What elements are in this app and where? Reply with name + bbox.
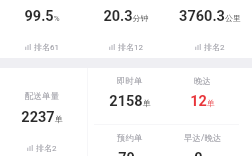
button[interactable]: 晚达 — [166, 68, 239, 124]
staticText: 排名61 — [34, 42, 59, 52]
button[interactable]: 配送单量 — [0, 68, 84, 156]
staticText: 预约单 — [117, 133, 143, 144]
button[interactable]: 即时单 — [94, 68, 166, 124]
staticText: 即时单 — [117, 76, 143, 87]
staticText: 晚达 — [194, 76, 211, 87]
staticText: 早达/晚达 — [184, 133, 222, 144]
staticText: 2237单 — [21, 109, 63, 126]
staticText: 排名2 — [204, 42, 225, 52]
button[interactable]: 预约单 — [94, 125, 166, 156]
button[interactable]: 20.3分钟 — [84, 0, 168, 58]
staticText: 12单 — [190, 93, 215, 110]
button[interactable]: 99.5% — [0, 0, 84, 58]
button[interactable]: 3760.3公里 — [168, 0, 252, 58]
staticText: 79单 — [118, 150, 143, 156]
staticText: 3760.3公里 — [179, 8, 241, 25]
staticText: 20.3分钟 — [103, 8, 149, 25]
staticText: 2158单 — [109, 93, 151, 110]
button[interactable]: 早达/晚达 — [166, 125, 239, 156]
staticText: 0单 — [194, 150, 211, 156]
staticText: 排名2 — [36, 143, 57, 153]
staticText: 99.5% — [24, 8, 60, 25]
staticText: 配送单量 — [25, 91, 59, 102]
staticText: 排名12 — [118, 42, 143, 52]
